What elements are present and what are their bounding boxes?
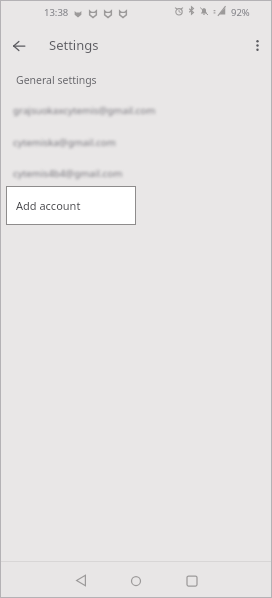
button[interactable]: Home — [115, 561, 156, 598]
button[interactable]: Back — [60, 561, 101, 598]
button[interactable]: cytemis4b4@gmail.com — [0, 162, 272, 184]
staticText: grajsuokaxcytemis@gmail.com — [13, 104, 156, 117]
staticText: Settings — [49, 36, 99, 54]
button[interactable]: Back — [6, 33, 32, 59]
staticText: 92% — [231, 6, 250, 19]
staticText: Add account — [16, 198, 81, 213]
staticText: cytemis4b4@gmail.com — [13, 167, 123, 180]
button[interactable]: More options — [245, 33, 269, 57]
button[interactable]: grajsuokaxcytemis@gmail.com — [0, 99, 272, 121]
button[interactable]: Recent apps — [171, 561, 212, 598]
staticText: General settings — [16, 73, 97, 87]
button[interactable]: cytemiska@gmail.com — [0, 131, 272, 153]
staticText: 13:38 — [44, 6, 69, 19]
button[interactable]: Add account — [6, 186, 136, 225]
staticText: cytemiska@gmail.com — [13, 136, 116, 149]
